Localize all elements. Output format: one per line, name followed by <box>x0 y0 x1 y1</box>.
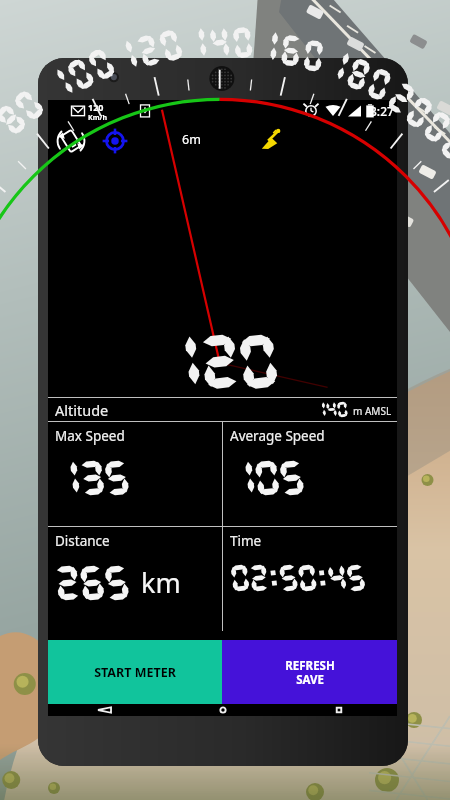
button[interactable]: Altitude <box>48 398 397 421</box>
button[interactable]: Rotate screen <box>54 124 88 158</box>
staticText: Distance <box>55 532 110 550</box>
button[interactable]: GPS location <box>100 126 130 156</box>
button[interactable]: Recents <box>318 704 360 716</box>
button[interactable]: Average Speed <box>223 422 397 526</box>
staticText: REFRESH SAVE <box>285 658 335 687</box>
staticText: Km/h <box>88 113 107 122</box>
staticText: Altitude <box>55 400 109 420</box>
staticText: m AMSL <box>353 404 392 418</box>
button[interactable]: Max Speed <box>48 422 222 526</box>
staticText: Average Speed <box>230 427 325 445</box>
staticText: 3:27 <box>370 103 394 119</box>
button[interactable]: REFRESH SAVE <box>222 640 397 704</box>
staticText: km <box>141 564 181 601</box>
button[interactable]: Home <box>202 704 244 716</box>
button[interactable]: Time <box>223 527 397 631</box>
button[interactable]: Distance <box>48 527 222 631</box>
staticText: Max Speed <box>55 427 125 445</box>
staticText: 6m <box>182 131 201 148</box>
button[interactable]: Satellite signal <box>257 127 283 153</box>
staticText: START METER <box>94 664 176 681</box>
staticText: 120 <box>88 101 104 113</box>
button[interactable]: Back <box>85 704 127 716</box>
staticText: Time <box>230 532 262 550</box>
button[interactable]: START METER <box>48 640 222 704</box>
